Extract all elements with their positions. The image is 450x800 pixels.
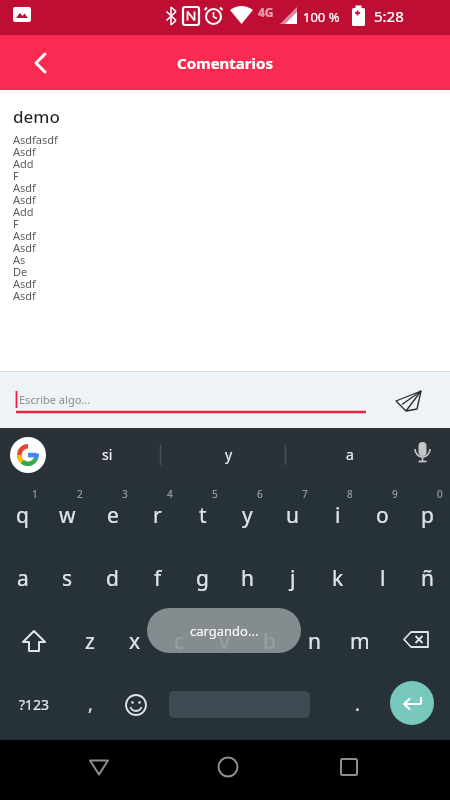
button[interactable]: Escribe algo... bbox=[19, 392, 91, 407]
staticText: demo bbox=[13, 105, 60, 128]
staticText: Comentarios bbox=[177, 53, 273, 73]
staticText: 6 bbox=[257, 487, 263, 501]
staticText: q bbox=[16, 501, 29, 530]
button[interactable]: h bbox=[225, 547, 270, 610]
staticText: 3 bbox=[122, 487, 128, 501]
staticText: 7 bbox=[302, 487, 308, 501]
button[interactable]: q bbox=[0, 484, 45, 547]
staticText: 1 bbox=[32, 487, 38, 501]
button[interactable]: l bbox=[360, 547, 405, 610]
button[interactable]: u bbox=[270, 484, 315, 547]
staticText: ñ bbox=[421, 564, 434, 593]
button[interactable]: . bbox=[335, 673, 380, 736]
button[interactable]: si bbox=[46, 428, 168, 481]
staticText: c bbox=[174, 627, 185, 656]
staticText: 5 bbox=[212, 487, 218, 501]
button[interactable]: i bbox=[315, 484, 360, 547]
staticText: cargando... bbox=[190, 622, 259, 640]
staticText: i bbox=[335, 501, 341, 530]
button[interactable]: r bbox=[135, 484, 180, 547]
staticText: d bbox=[106, 564, 119, 593]
staticText: 2 bbox=[77, 487, 83, 501]
button[interactable]: b bbox=[247, 610, 292, 673]
staticText: o bbox=[376, 501, 389, 530]
staticText: m bbox=[350, 627, 370, 656]
staticText: Asdfasdf Asdf Add F Asdf Asdf Add F Asdf… bbox=[13, 132, 58, 303]
staticText: v bbox=[219, 627, 230, 656]
staticText: b bbox=[263, 627, 276, 656]
button[interactable]: y bbox=[168, 428, 289, 481]
button[interactable]: m bbox=[337, 610, 382, 673]
staticText: j bbox=[290, 564, 296, 593]
staticText: 8 bbox=[347, 487, 353, 501]
button[interactable]: w bbox=[45, 484, 90, 547]
staticText: l bbox=[380, 564, 386, 593]
button[interactable]: n bbox=[292, 610, 337, 673]
staticText: t bbox=[199, 501, 207, 530]
staticText: si bbox=[102, 445, 113, 464]
staticText: ?123 bbox=[19, 695, 50, 714]
staticText: 100 % bbox=[303, 8, 340, 26]
button[interactable]: f bbox=[135, 547, 180, 610]
staticText: x bbox=[129, 627, 141, 656]
staticText: y bbox=[225, 445, 233, 464]
staticText: y bbox=[242, 501, 253, 530]
staticText: 0 bbox=[437, 487, 443, 501]
button[interactable]: y bbox=[225, 484, 270, 547]
staticText: u bbox=[286, 501, 299, 530]
button[interactable]: a bbox=[289, 428, 410, 481]
button[interactable]: v bbox=[202, 610, 247, 673]
button[interactable] bbox=[400, 430, 446, 479]
staticText: 5:28 bbox=[374, 6, 404, 26]
staticText: f bbox=[154, 564, 162, 593]
button[interactable]: o bbox=[360, 484, 405, 547]
button[interactable]: c bbox=[157, 610, 202, 673]
button[interactable]: d bbox=[90, 547, 135, 610]
button[interactable]: g bbox=[180, 547, 225, 610]
staticText: n bbox=[308, 627, 321, 656]
staticText: a bbox=[17, 564, 29, 593]
button[interactable] bbox=[390, 681, 434, 725]
staticText: 9 bbox=[392, 487, 398, 501]
staticText: , bbox=[88, 692, 93, 717]
staticText: s bbox=[62, 564, 73, 593]
staticText: h bbox=[241, 564, 254, 593]
staticText: . bbox=[355, 692, 360, 717]
button[interactable] bbox=[10, 437, 46, 473]
staticText: p bbox=[421, 501, 434, 530]
staticText: 4G bbox=[258, 4, 274, 20]
button[interactable]: k bbox=[315, 547, 360, 610]
button[interactable] bbox=[327, 745, 371, 789]
button[interactable]: p bbox=[405, 484, 450, 547]
button[interactable]: e bbox=[90, 484, 135, 547]
button[interactable] bbox=[113, 673, 158, 736]
staticText: e bbox=[107, 501, 119, 530]
staticText: g bbox=[196, 564, 209, 593]
button[interactable]: ñ bbox=[405, 547, 450, 610]
button[interactable] bbox=[382, 610, 450, 673]
button[interactable] bbox=[206, 745, 250, 789]
button[interactable]: z bbox=[68, 610, 112, 673]
staticText: k bbox=[332, 564, 344, 593]
button[interactable] bbox=[17, 39, 65, 87]
button[interactable]: ?123 bbox=[0, 673, 68, 736]
staticText: a bbox=[346, 445, 354, 464]
button[interactable]: , bbox=[68, 673, 113, 736]
button[interactable] bbox=[0, 610, 68, 673]
button[interactable]: t bbox=[180, 484, 225, 547]
staticText: z bbox=[85, 627, 95, 656]
button[interactable]: a bbox=[0, 547, 45, 610]
button[interactable]: s bbox=[45, 547, 90, 610]
staticText: w bbox=[59, 501, 76, 530]
button[interactable]: x bbox=[112, 610, 157, 673]
staticText: 4 bbox=[167, 487, 173, 501]
button[interactable]: j bbox=[270, 547, 315, 610]
staticText: r bbox=[153, 501, 162, 530]
button[interactable] bbox=[77, 746, 121, 790]
button[interactable] bbox=[386, 378, 430, 422]
